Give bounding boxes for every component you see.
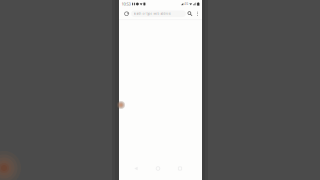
button[interactable]: Recents	[174, 163, 186, 174]
button[interactable]: Home	[152, 163, 164, 174]
button[interactable]: More options	[194, 9, 201, 18]
staticText: Search or type web address	[134, 12, 171, 15]
button[interactable]: Reload	[122, 9, 131, 18]
staticText: 10:53	[121, 1, 130, 7]
staticText: 4G	[184, 2, 188, 6]
button[interactable]: Search	[186, 9, 194, 18]
